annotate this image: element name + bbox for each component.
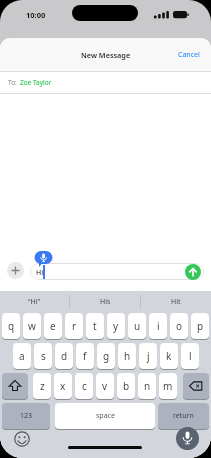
staticText: q — [8, 319, 15, 333]
staticText: h — [124, 349, 131, 363]
staticText: f — [83, 349, 87, 363]
button[interactable]: Hit — [141, 291, 211, 313]
button[interactable]: d — [55, 343, 73, 369]
staticText: Hit — [171, 297, 181, 307]
button[interactable]: Hi — [30, 263, 204, 280]
staticText: l — [189, 349, 192, 363]
staticText: u — [134, 319, 141, 333]
button[interactable]: To: — [8, 72, 211, 93]
button[interactable] — [185, 264, 201, 280]
staticText: d — [61, 349, 68, 363]
staticText: n — [144, 379, 151, 393]
button[interactable]: l — [181, 343, 199, 369]
button[interactable]: a — [13, 343, 31, 369]
button[interactable]: w — [23, 313, 41, 339]
staticText: b — [123, 379, 130, 393]
button[interactable]: j — [139, 343, 157, 369]
staticText: y — [113, 319, 119, 333]
button[interactable]: k — [160, 343, 178, 369]
button[interactable]: o — [170, 313, 188, 339]
button[interactable]: return — [158, 403, 209, 429]
staticText: v — [102, 379, 108, 393]
staticText: Zoe Taylor — [20, 78, 52, 87]
button[interactable]: Cancel — [178, 38, 200, 71]
staticText: a — [19, 349, 25, 363]
button[interactable]: v — [96, 373, 114, 399]
staticText: c — [82, 379, 87, 393]
button[interactable]: u — [128, 313, 146, 339]
button[interactable]: His — [70, 291, 140, 313]
button[interactable]: c — [75, 373, 93, 399]
button[interactable]: q — [2, 313, 20, 339]
staticText: s — [41, 349, 46, 363]
button[interactable]: 123 — [2, 403, 50, 429]
staticText: k — [166, 349, 172, 363]
button[interactable]: z — [33, 373, 51, 399]
staticText: New Message — [81, 50, 131, 60]
staticText: m — [163, 379, 173, 393]
button[interactable]: t — [86, 313, 104, 339]
button[interactable]: f — [76, 343, 94, 369]
staticText: return — [173, 411, 194, 421]
staticText: t — [93, 319, 97, 333]
button[interactable]: space — [55, 403, 155, 429]
button[interactable]: x — [54, 373, 72, 399]
staticText: i — [157, 319, 160, 333]
staticText: 10:00 — [26, 10, 46, 20]
button[interactable]: r — [65, 313, 83, 339]
button[interactable]: b — [117, 373, 135, 399]
button[interactable]: h — [118, 343, 136, 369]
button[interactable]: i — [149, 313, 167, 339]
staticText: r — [72, 319, 77, 333]
staticText: w — [28, 319, 36, 333]
staticText: “Hi” — [28, 297, 41, 307]
button[interactable] — [7, 262, 24, 279]
staticText: o — [176, 319, 183, 333]
staticText: Hi — [36, 268, 44, 278]
staticText: j — [147, 349, 150, 363]
staticText: e — [50, 319, 56, 333]
staticText: g — [103, 349, 110, 363]
staticText: p — [197, 319, 204, 333]
staticText: Cancel — [178, 50, 200, 60]
staticText: To: — [8, 78, 17, 87]
button[interactable]: e — [44, 313, 62, 339]
staticText: 123 — [20, 411, 33, 421]
button[interactable]: n — [138, 373, 156, 399]
staticText: z — [40, 379, 45, 393]
staticText: x — [60, 379, 66, 393]
button[interactable]: p — [191, 313, 209, 339]
button[interactable]: g — [97, 343, 115, 369]
staticText: His — [100, 297, 111, 307]
staticText: space — [96, 411, 115, 421]
button[interactable]: y — [107, 313, 125, 339]
button[interactable] — [183, 373, 209, 399]
button[interactable] — [176, 427, 199, 450]
button[interactable]: m — [159, 373, 177, 399]
button[interactable]: s — [34, 343, 52, 369]
button[interactable]: “Hi” — [0, 291, 69, 313]
button[interactable] — [13, 430, 31, 448]
button[interactable] — [2, 373, 28, 399]
